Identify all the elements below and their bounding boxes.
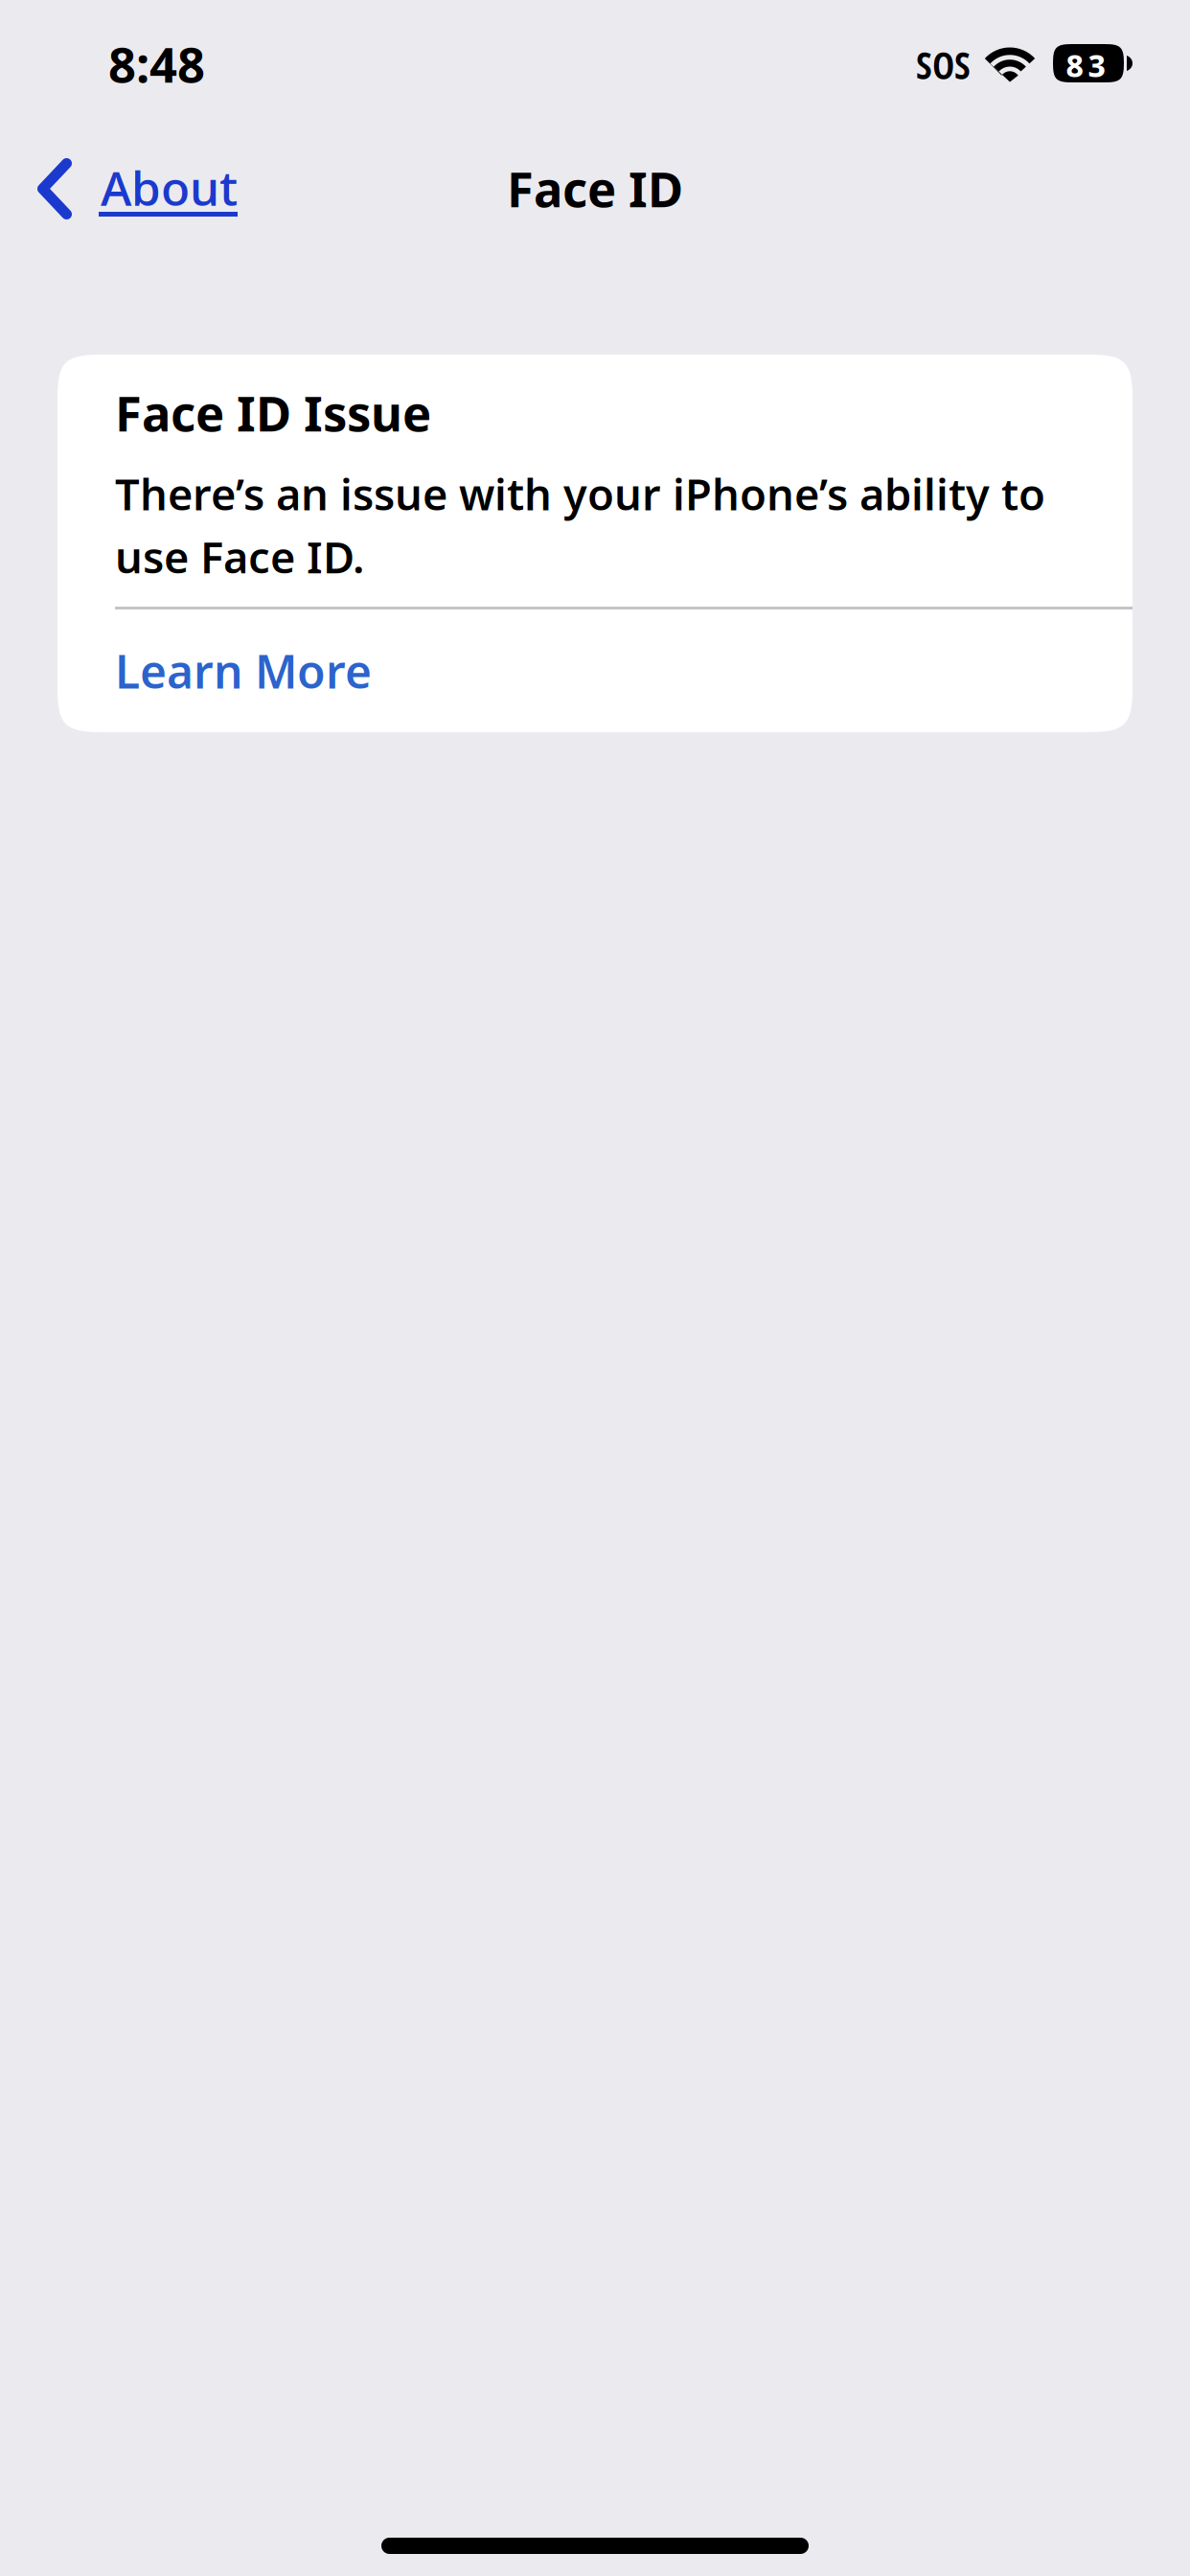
staticText: 8:48 xyxy=(108,31,205,97)
button[interactable]: About xyxy=(0,145,267,227)
staticText: About xyxy=(101,155,238,220)
staticText: There’s an issue with your iPhone’s abil… xyxy=(115,464,1045,586)
staticText: Learn More xyxy=(115,639,372,702)
staticText: 83 xyxy=(1066,44,1105,86)
staticText: Face ID xyxy=(507,155,683,221)
staticText: Face ID Issue xyxy=(115,379,431,446)
staticText: SOS xyxy=(916,38,971,91)
button[interactable]: Learn More xyxy=(57,355,1133,477)
